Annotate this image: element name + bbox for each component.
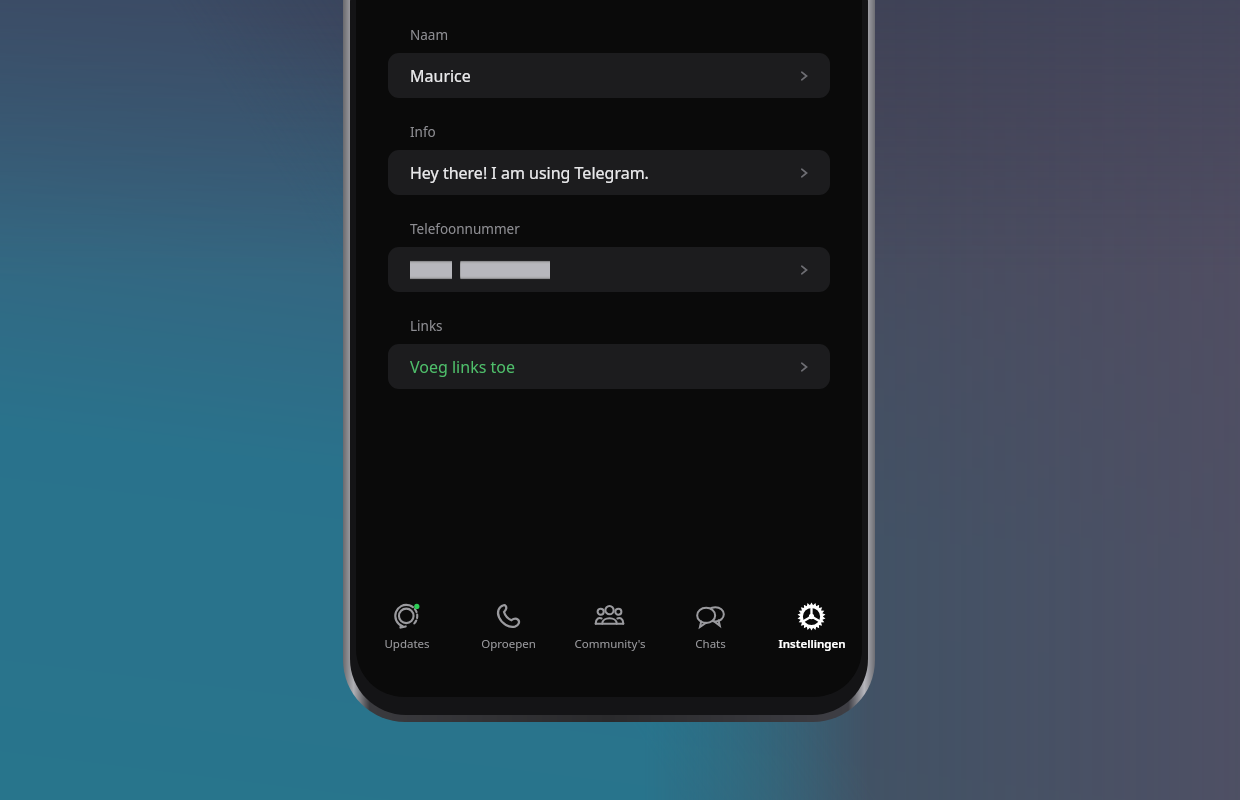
staticText: Naam	[410, 26, 449, 44]
button[interactable]: Updates	[356, 598, 458, 660]
staticText: Voeg links toe	[410, 356, 515, 378]
staticText: Links	[410, 317, 443, 335]
button[interactable]: Community's	[559, 598, 660, 660]
button[interactable]: Voeg links toe	[388, 344, 830, 389]
button[interactable]: Chats	[660, 598, 761, 660]
staticText: Updates	[384, 636, 430, 652]
staticText: Maurice	[410, 65, 471, 87]
staticText: Community's	[574, 636, 646, 652]
button[interactable]: Maurice	[388, 53, 830, 98]
button[interactable]	[388, 247, 830, 292]
staticText: Instellingen	[778, 636, 846, 652]
button[interactable]: Instellingen	[761, 598, 862, 660]
staticText: Info	[410, 123, 436, 141]
staticText: Chats	[695, 636, 726, 652]
staticText: Telefoonnummer	[410, 220, 520, 238]
button[interactable]: Hey there! I am using Telegram.	[388, 150, 830, 195]
button[interactable]: Oproepen	[458, 598, 559, 660]
staticText: Oproepen	[481, 636, 536, 652]
staticText: Hey there! I am using Telegram.	[410, 162, 649, 184]
